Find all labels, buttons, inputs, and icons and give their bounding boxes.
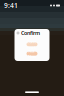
staticText: Confirm [21, 29, 40, 37]
button[interactable]: Continue [26, 42, 37, 46]
button[interactable]: Not Now [26, 52, 37, 56]
staticText: 9:41 [4, 1, 18, 10]
staticText: Continue [26, 39, 37, 50]
staticText: Not Now [28, 48, 36, 59]
